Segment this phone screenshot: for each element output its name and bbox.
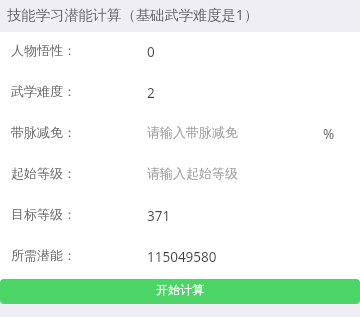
staticText: 请输入带脉减免 (147, 124, 238, 140)
staticText: 371 (147, 207, 171, 225)
staticText: 技能学习潜能计算（基础武学难度是1） (7, 5, 259, 25)
button[interactable]: 带脉减免： (0, 111, 360, 152)
staticText: 开始计算 (156, 282, 204, 297)
staticText: 带脉减免： (11, 124, 147, 140)
staticText: 115049580 (147, 248, 217, 266)
button[interactable]: 开始计算 (0, 279, 360, 304)
staticText: % (323, 125, 335, 143)
button[interactable]: 武学难度： (0, 70, 360, 111)
button[interactable]: 人物悟性： (0, 29, 360, 70)
staticText: 所需潜能： (11, 247, 147, 263)
staticText: 0 (147, 43, 155, 61)
staticText: 起始等级： (11, 165, 147, 181)
button[interactable]: 所需潜能： (0, 234, 360, 275)
button[interactable]: 目标等级： (0, 193, 360, 234)
staticText: 目标等级： (11, 206, 147, 222)
staticText: 请输入起始等级 (147, 165, 238, 181)
staticText: 人物悟性： (11, 42, 147, 58)
button[interactable]: 起始等级： (0, 152, 360, 193)
staticText: 2 (147, 84, 155, 102)
staticText: 武学难度： (11, 83, 147, 99)
